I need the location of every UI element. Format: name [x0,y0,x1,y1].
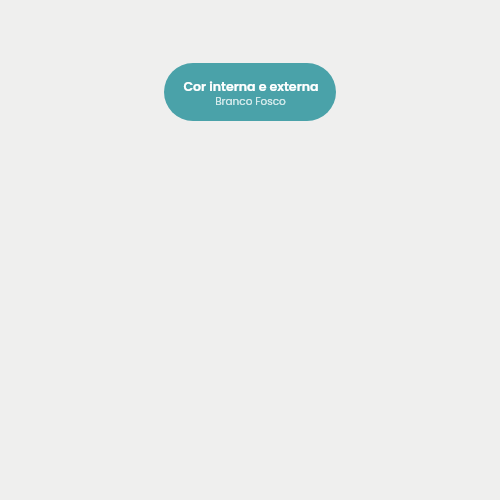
staticText: Branco Fosco [215,94,286,109]
button[interactable]: Cor interna e externa [164,63,336,121]
staticText: Cor interna e externa [183,78,319,96]
